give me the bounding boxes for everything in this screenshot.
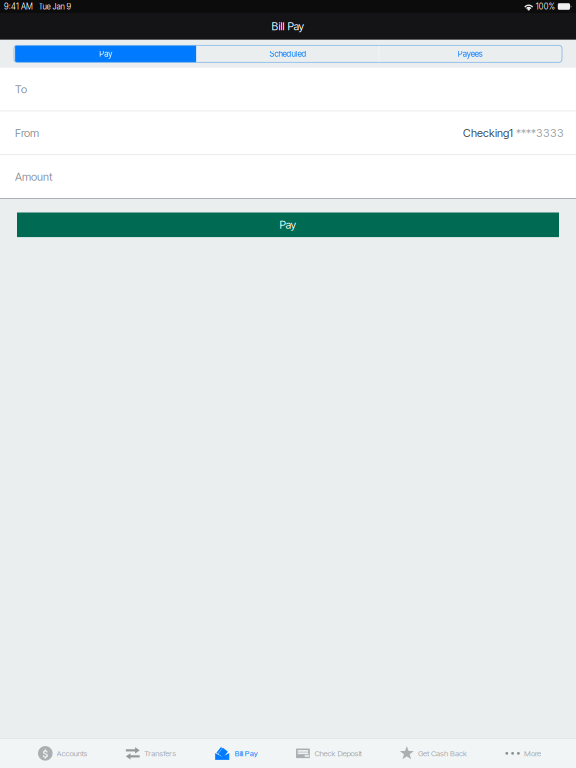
staticText: 9:41 AM: [4, 2, 33, 11]
staticText: Get Cash Back: [418, 749, 467, 758]
staticText: Bill Pay: [235, 749, 258, 758]
button[interactable]: Get Cash Back: [400, 739, 467, 768]
staticText: ****3333: [516, 126, 564, 140]
staticText: Transfers: [144, 749, 176, 758]
staticText: Pay: [99, 49, 112, 59]
staticText: Scheduled: [269, 49, 306, 59]
staticText: Tue Jan 9: [38, 2, 71, 11]
staticText: Accounts: [57, 749, 88, 758]
button[interactable]: More: [505, 739, 541, 768]
staticText: From: [15, 126, 39, 140]
button[interactable]: Pay: [15, 45, 196, 62]
button[interactable]: Scheduled: [197, 45, 379, 62]
staticText: More: [524, 749, 541, 758]
button[interactable]: To: [0, 68, 576, 111]
button[interactable]: Pay: [17, 212, 559, 237]
staticText: 100%: [536, 2, 555, 11]
staticText: Amount: [15, 170, 53, 183]
button[interactable]: Transfers: [126, 739, 176, 768]
staticText: Check Deposit: [314, 749, 361, 758]
button[interactable]: From: [0, 111, 576, 154]
button[interactable]: Bill Pay: [215, 739, 258, 768]
button[interactable]: Check Deposit: [296, 739, 361, 768]
button[interactable]: Payees: [379, 45, 561, 62]
staticText: Checking1: [463, 126, 513, 140]
staticText: Pay: [279, 218, 296, 231]
button[interactable]: Amount: [0, 155, 576, 198]
staticText: Bill Pay: [271, 20, 304, 33]
staticText: Payees: [458, 49, 483, 59]
button[interactable]: Accounts: [38, 739, 88, 768]
staticText: To: [15, 82, 27, 96]
